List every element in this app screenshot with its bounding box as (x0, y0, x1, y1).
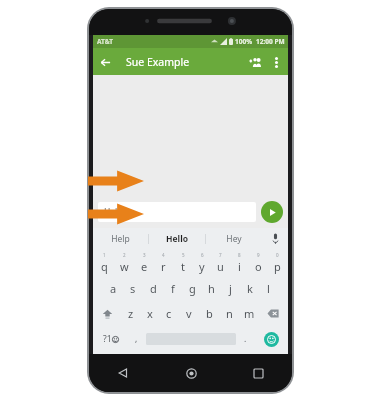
button[interactable]: n (219, 301, 239, 326)
staticText: AT&T (97, 37, 113, 46)
staticText: m (244, 306, 255, 321)
button[interactable]: Hel (98, 202, 256, 222)
staticText: Sue Example (126, 55, 190, 69)
staticText: Hello (166, 233, 188, 245)
button[interactable]: Recent apps (246, 361, 270, 385)
staticText: w (120, 259, 129, 274)
staticText: r (161, 259, 166, 274)
staticText: v (186, 306, 192, 321)
button[interactable]: l (259, 276, 278, 301)
staticText: q (101, 259, 108, 274)
button[interactable]: 8 (230, 249, 249, 276)
staticText: 12:00 PM (256, 37, 285, 46)
staticText: p (274, 259, 281, 274)
button[interactable]: More options (266, 52, 286, 72)
staticText: t (181, 259, 185, 274)
button[interactable]: x (140, 301, 159, 326)
button[interactable]: z (121, 301, 140, 326)
button[interactable]: c (159, 301, 179, 326)
staticText: 2 (123, 252, 126, 258)
button[interactable]: 1 (94, 249, 114, 276)
staticText: k (247, 281, 253, 296)
staticText: 5 (182, 252, 185, 258)
staticText: Help (111, 233, 130, 245)
staticText: h (208, 281, 215, 296)
button[interactable]: , (127, 326, 146, 352)
button[interactable]: f (163, 276, 183, 301)
button[interactable]: Emoji (255, 326, 287, 352)
staticText: j (229, 281, 232, 296)
button[interactable]: k (240, 276, 259, 301)
button[interactable]: v (179, 301, 199, 326)
button[interactable]: Back (93, 50, 117, 74)
button[interactable]: Send (261, 201, 283, 223)
button[interactable]: Hello (149, 228, 205, 249)
staticText: g (189, 281, 196, 296)
staticText: 0 (276, 252, 279, 258)
button[interactable]: 6 (192, 249, 211, 276)
button[interactable]: Shift (94, 301, 121, 326)
button[interactable]: j (221, 276, 240, 301)
button[interactable]: s (123, 276, 143, 301)
staticText: u (217, 259, 224, 274)
button[interactable]: h (202, 276, 221, 301)
staticText: , (135, 333, 138, 345)
staticText: . (244, 333, 247, 345)
button[interactable]: 7 (211, 249, 230, 276)
button[interactable]: m (239, 301, 259, 326)
staticText: i (238, 259, 241, 274)
staticText: l (267, 281, 270, 296)
button[interactable]: 9 (249, 249, 268, 276)
button[interactable]: g (183, 276, 202, 301)
button[interactable]: 3 (134, 249, 154, 276)
button[interactable]: d (143, 276, 163, 301)
button[interactable]: Backspace (259, 301, 287, 326)
staticText: 6 (201, 252, 204, 258)
staticText: y (199, 259, 205, 274)
staticText: 7 (219, 252, 222, 258)
staticText: 100% (235, 37, 253, 46)
staticText: e (141, 259, 148, 274)
button[interactable]: 4 (154, 249, 173, 276)
staticText: z (128, 306, 134, 321)
staticText: Hel (104, 206, 118, 218)
button[interactable]: Symbols and emoji (94, 326, 127, 352)
staticText: 8 (238, 252, 241, 258)
button[interactable]: 0 (268, 249, 287, 276)
staticText: d (150, 281, 157, 296)
button[interactable]: Back (111, 361, 135, 385)
staticText: 1 (103, 252, 106, 258)
staticText: f (171, 281, 175, 296)
staticText: c (166, 306, 172, 321)
staticText: s (130, 281, 136, 296)
button[interactable]: . (236, 326, 255, 352)
button[interactable]: 2 (114, 249, 134, 276)
button[interactable]: Hey (206, 228, 262, 249)
staticText: 4 (162, 252, 165, 258)
staticText: n (226, 306, 233, 321)
button[interactable]: Home (179, 361, 203, 385)
staticText: ?1 (103, 333, 112, 345)
button[interactable]: a (103, 276, 123, 301)
button[interactable]: Help (93, 228, 148, 249)
staticText: a (110, 281, 117, 296)
button[interactable]: 5 (173, 249, 192, 276)
button[interactable]: Add people (244, 51, 266, 73)
staticText: b (206, 306, 213, 321)
button[interactable]: Voice input (262, 228, 288, 249)
staticText: o (255, 259, 262, 274)
staticText: 3 (143, 252, 146, 258)
button[interactable]: b (199, 301, 219, 326)
staticText: x (147, 306, 153, 321)
staticText: 9 (257, 252, 260, 258)
staticText: Hey (226, 233, 242, 245)
